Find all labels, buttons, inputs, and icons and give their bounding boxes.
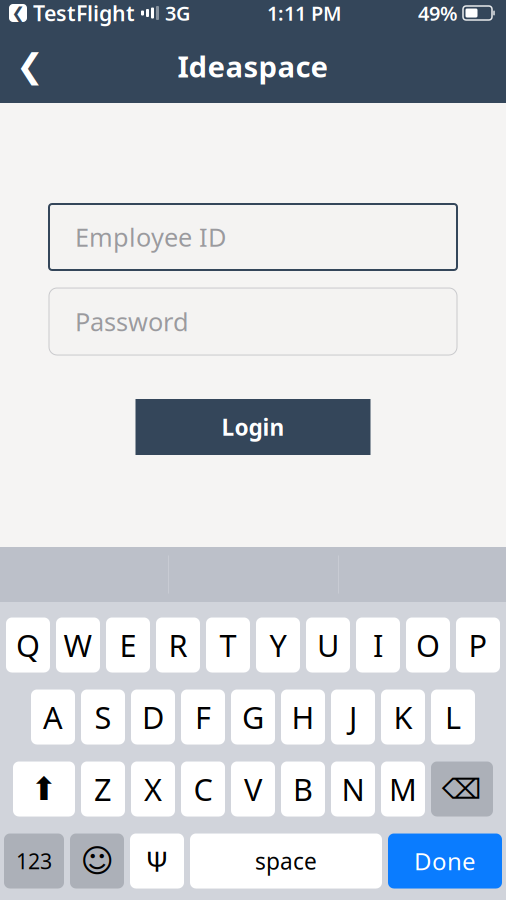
staticText: N: [341, 769, 364, 809]
button[interactable]: E: [106, 617, 150, 672]
staticText: Q: [16, 625, 40, 665]
staticText: ☺: [80, 843, 113, 879]
staticText: P: [468, 625, 487, 665]
staticText: B: [293, 769, 313, 809]
staticText: H: [291, 697, 314, 737]
staticText: I: [373, 625, 383, 665]
button[interactable]: Z: [81, 761, 125, 816]
staticText: Ψ: [145, 842, 168, 880]
staticText: A: [43, 697, 63, 737]
button[interactable]: D: [131, 689, 175, 744]
staticText: V: [244, 769, 262, 809]
button[interactable]: O: [406, 617, 450, 672]
staticText: TestFlight: [33, 0, 135, 27]
button[interactable]: Y: [256, 617, 300, 672]
staticText: R: [168, 625, 187, 665]
staticText: 123: [16, 847, 52, 875]
staticText: 3G: [165, 0, 191, 26]
button[interactable]: Back: [0, 38, 60, 94]
staticText: O: [416, 625, 440, 665]
button[interactable]: Numbers: [4, 833, 64, 888]
staticText: J: [349, 697, 357, 737]
button[interactable]: R: [156, 617, 200, 672]
staticText: 1:11 PM: [267, 0, 342, 26]
button[interactable]: M: [381, 761, 425, 816]
button[interactable]: H: [281, 689, 325, 744]
button[interactable]: Dictation: [130, 833, 184, 888]
staticText: space: [255, 846, 317, 876]
button[interactable]: Done: [388, 833, 502, 888]
staticText: Password: [75, 305, 189, 338]
staticText: E: [119, 625, 136, 665]
staticText: X: [144, 769, 162, 809]
button[interactable]: Emoji: [70, 833, 124, 888]
button[interactable]: Delete: [431, 761, 493, 816]
staticText: F: [195, 697, 211, 737]
button[interactable]: C: [181, 761, 225, 816]
button[interactable]: K: [381, 689, 425, 744]
button[interactable]: G: [231, 689, 275, 744]
staticText: Done: [414, 845, 476, 877]
button[interactable]: Employee ID: [49, 204, 457, 270]
staticText: U: [317, 625, 339, 665]
staticText: L: [445, 697, 461, 737]
button[interactable]: X: [131, 761, 175, 816]
staticText: ⌫: [442, 773, 482, 805]
staticText: Z: [94, 769, 112, 809]
button[interactable]: I: [356, 617, 400, 672]
staticText: Login: [221, 412, 284, 442]
button[interactable]: space: [190, 833, 382, 888]
staticText: Employee ID: [75, 220, 226, 254]
staticText: W: [63, 625, 92, 665]
staticText: S: [94, 697, 111, 737]
button[interactable]: N: [331, 761, 375, 816]
button[interactable]: Shift: [13, 761, 75, 816]
button[interactable]: U: [306, 617, 350, 672]
staticText: K: [393, 697, 412, 737]
button[interactable]: W: [56, 617, 100, 672]
button[interactable]: Login: [135, 399, 370, 455]
staticText: ❮: [16, 47, 44, 85]
staticText: M: [389, 769, 417, 809]
button[interactable]: B: [281, 761, 325, 816]
button[interactable]: Password: [49, 288, 457, 355]
button[interactable]: P: [456, 617, 500, 672]
button[interactable]: L: [431, 689, 475, 744]
button[interactable]: S: [81, 689, 125, 744]
button[interactable]: A: [31, 689, 75, 744]
button[interactable]: Q: [6, 617, 50, 672]
button[interactable]: J: [331, 689, 375, 744]
staticText: G: [242, 697, 264, 737]
staticText: T: [219, 625, 236, 665]
staticText: D: [142, 697, 164, 737]
button[interactable]: T: [206, 617, 250, 672]
staticText: ❮: [11, 4, 24, 22]
staticText: ⬆: [30, 771, 57, 807]
button[interactable]: V: [231, 761, 275, 816]
button[interactable]: F: [181, 689, 225, 744]
staticText: C: [193, 769, 212, 809]
staticText: 49%: [418, 0, 458, 26]
staticText: Ideaspace: [177, 46, 328, 85]
staticText: Y: [269, 625, 286, 665]
